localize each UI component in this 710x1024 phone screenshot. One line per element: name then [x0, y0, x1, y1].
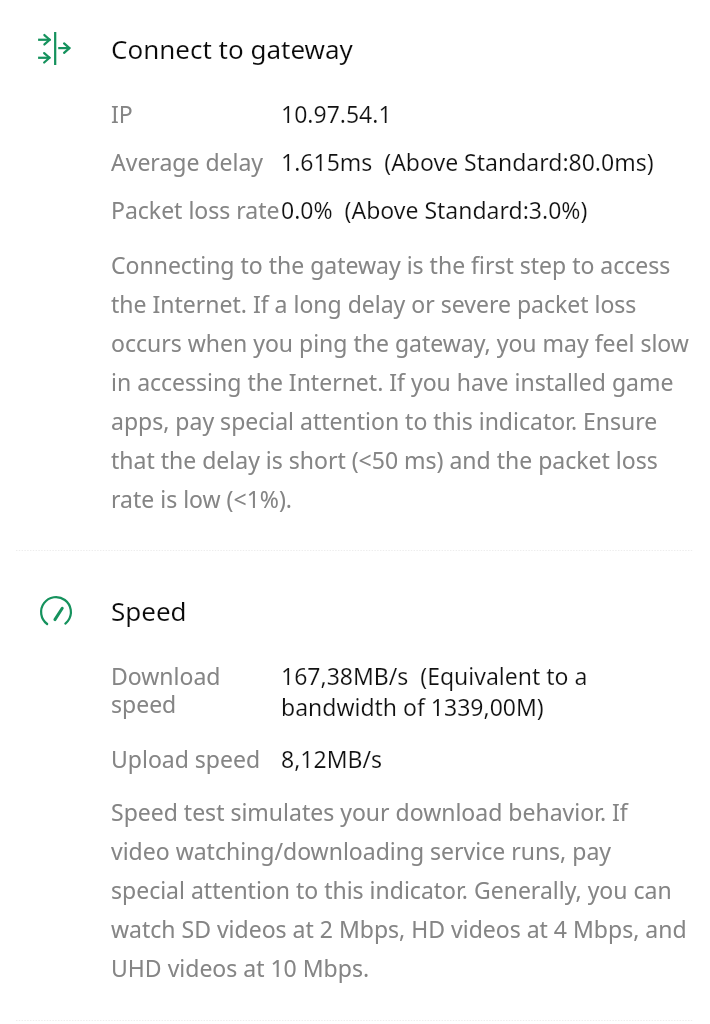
staticText: Upload speed [111, 743, 261, 774]
staticText: IP [111, 98, 133, 129]
staticText: Speed [111, 593, 187, 628]
other: Speed test [40, 596, 72, 628]
staticText: Speed test simulates your download behav… [111, 796, 689, 983]
staticText: Connect to gateway [111, 31, 353, 66]
staticText: Connecting to the gateway is the first s… [111, 249, 689, 514]
button[interactable]: Upload speed [111, 743, 689, 774]
button[interactable]: IP [111, 98, 689, 129]
staticText: 167,38MB/s (Equivalent to a bandwidth of… [281, 660, 689, 723]
staticText: Packet loss rate [111, 194, 280, 225]
staticText: Average delay [111, 146, 264, 177]
button[interactable]: Gateway connection [0, 19, 710, 75]
staticText: 1.615ms (Above Standard:80.0ms) [281, 146, 654, 177]
button[interactable]: Packet loss rate [111, 194, 689, 225]
staticText: Download speed [111, 660, 281, 720]
button[interactable]: Average delay [111, 146, 689, 177]
button[interactable]: Speed test [0, 581, 710, 637]
staticText: 8,12MB/s [281, 743, 383, 774]
staticText: 0.0% (Above Standard:3.0%) [281, 194, 588, 225]
other: Gateway connection [38, 32, 70, 65]
staticText: 10.97.54.1 [281, 98, 392, 129]
button[interactable]: Download speed [111, 660, 689, 723]
